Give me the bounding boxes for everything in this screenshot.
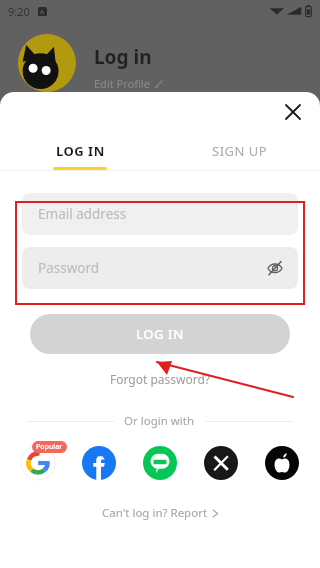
staticText: 9:20 <box>8 4 30 19</box>
staticText: Log in <box>94 44 152 70</box>
staticText: Popular <box>36 442 63 452</box>
button[interactable]: Email address <box>22 193 298 235</box>
button[interactable]: LOG IN <box>30 314 290 354</box>
staticText: Edit Profile <box>94 76 150 91</box>
button[interactable]: Sign in with LINE <box>140 443 180 483</box>
staticText: Or login with <box>124 413 195 429</box>
button[interactable]: Close <box>278 97 308 127</box>
staticText: LOG IN <box>56 142 105 160</box>
staticText: Password <box>38 259 100 277</box>
button[interactable]: Sign in with Apple <box>262 443 302 483</box>
button[interactable]: Sign in with Google <box>18 443 58 483</box>
staticText: LOG IN <box>136 325 184 343</box>
button[interactable]: Password <box>22 247 298 289</box>
button[interactable]: LOG IN <box>0 132 160 170</box>
button[interactable]: Forgot password? <box>106 367 215 391</box>
button[interactable]: Sign in with X <box>201 443 241 483</box>
button[interactable]: SIGN UP <box>160 132 320 170</box>
staticText: SIGN UP <box>212 142 268 160</box>
button[interactable]: Show password <box>262 255 288 281</box>
button[interactable]: Can't log in? Report <box>98 501 223 525</box>
staticText: Forgot password? <box>110 371 211 387</box>
staticText: Can't log in? Report <box>102 505 208 521</box>
staticText: A <box>40 8 45 16</box>
staticText: Email address <box>38 205 127 223</box>
button[interactable]: Sign in with Facebook <box>79 443 119 483</box>
